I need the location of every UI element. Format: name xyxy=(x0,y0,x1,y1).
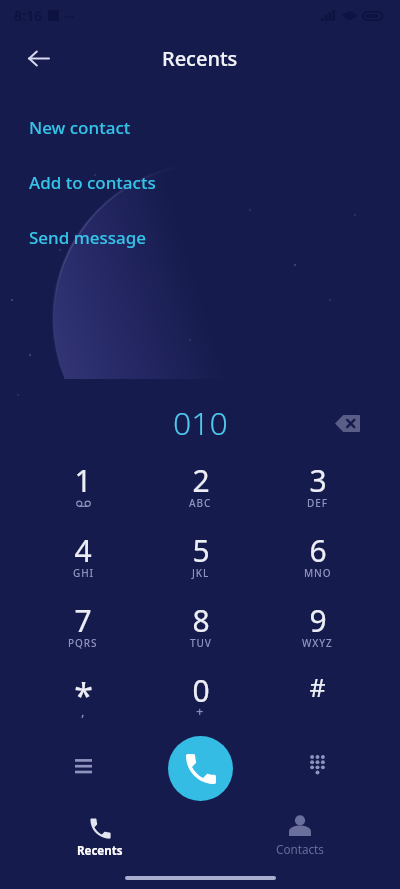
staticText: 9 xyxy=(309,600,327,641)
button[interactable]: 8 xyxy=(142,593,259,663)
button[interactable]: 9 xyxy=(259,593,376,663)
staticText: WXYZ xyxy=(302,636,333,650)
staticText: Add to contacts xyxy=(29,171,156,194)
button[interactable]: * xyxy=(24,663,142,733)
button[interactable]: 4 xyxy=(24,523,142,593)
staticText: ABC xyxy=(189,496,212,510)
staticText: * xyxy=(74,672,93,718)
staticText: PQRS xyxy=(68,636,98,650)
button[interactable]: New contact xyxy=(0,100,400,155)
staticText: 010 xyxy=(173,401,228,445)
staticText: 8 xyxy=(192,600,210,641)
button[interactable]: 5 xyxy=(142,523,259,593)
staticText: 0 xyxy=(192,670,210,711)
button[interactable]: 7 xyxy=(24,593,142,663)
staticText: JKL xyxy=(192,566,210,580)
button[interactable]: Backspace xyxy=(327,403,367,443)
staticText: , xyxy=(81,702,86,720)
staticText: New contact xyxy=(29,116,131,139)
staticText: Send message xyxy=(29,226,147,249)
staticText: + xyxy=(196,702,205,720)
staticText: 6 xyxy=(309,530,327,571)
staticText: 7 xyxy=(74,600,92,641)
button[interactable]: Send message xyxy=(0,210,400,265)
button[interactable]: Back xyxy=(16,36,60,80)
staticText: 2 xyxy=(192,460,210,501)
button[interactable]: 2 xyxy=(142,453,259,523)
staticText: 4 xyxy=(74,530,92,571)
staticText: 3 xyxy=(309,460,327,501)
button[interactable]: 1 xyxy=(24,453,142,523)
button[interactable]: 0 xyxy=(142,663,259,733)
staticText: GHI xyxy=(73,566,94,580)
staticText: Contacts xyxy=(276,841,324,857)
staticText: Recents xyxy=(77,843,123,859)
staticText: DEF xyxy=(307,496,328,510)
button[interactable]: 3 xyxy=(259,453,376,523)
button[interactable]: Call log menu xyxy=(24,725,142,805)
button[interactable]: # xyxy=(259,663,376,733)
staticText: TUV xyxy=(190,636,212,650)
button[interactable]: Add to contacts xyxy=(0,155,400,210)
button[interactable]: Recents xyxy=(0,809,200,883)
staticText: 8:16 xyxy=(14,6,42,25)
staticText: 1 xyxy=(74,460,92,501)
button[interactable]: 6 xyxy=(259,523,376,593)
button[interactable]: Call xyxy=(168,736,233,801)
button[interactable]: Dialpad xyxy=(259,725,376,805)
staticText: 5 xyxy=(192,530,210,571)
button[interactable]: Contacts xyxy=(200,809,400,883)
staticText: # xyxy=(309,670,326,704)
staticText: MNO xyxy=(304,566,332,580)
staticText: Recents xyxy=(162,45,238,72)
